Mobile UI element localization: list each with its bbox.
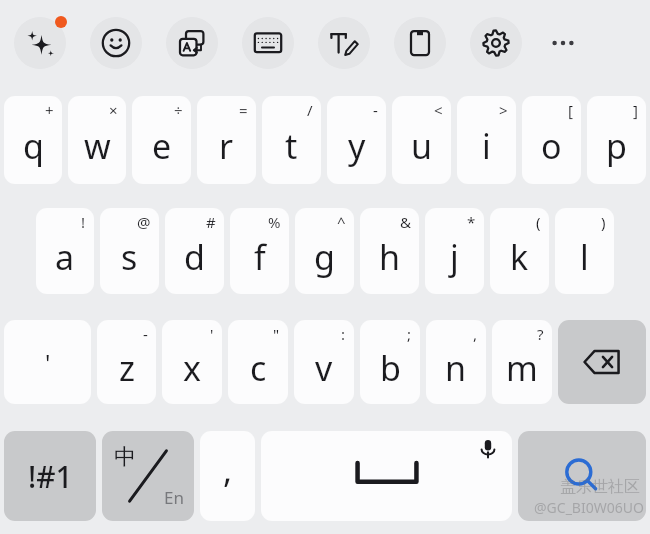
staticText: s bbox=[121, 234, 138, 280]
staticText: j bbox=[450, 234, 459, 280]
staticText: ^ bbox=[337, 212, 346, 232]
staticText: b bbox=[380, 345, 401, 391]
staticText: x bbox=[183, 345, 201, 391]
staticText: f bbox=[254, 234, 266, 280]
staticText: p bbox=[606, 123, 627, 169]
button[interactable]: ÷ bbox=[132, 96, 191, 184]
staticText: d bbox=[184, 234, 205, 280]
staticText: n bbox=[445, 345, 467, 391]
staticText: ; bbox=[407, 324, 412, 344]
staticText: y bbox=[348, 123, 366, 169]
button[interactable]: = bbox=[197, 96, 256, 184]
staticText: ! bbox=[81, 212, 86, 232]
button[interactable]: Keyboard layout bbox=[242, 17, 294, 69]
staticText: , bbox=[223, 447, 233, 493]
staticText: @ bbox=[137, 212, 151, 232]
staticText: !#1 bbox=[28, 456, 73, 497]
button[interactable]: - bbox=[327, 96, 386, 184]
staticText: g bbox=[314, 234, 335, 280]
staticText: e bbox=[152, 123, 172, 169]
button[interactable]: - bbox=[97, 320, 156, 404]
staticText: - bbox=[373, 100, 378, 120]
button[interactable]: Space bbox=[261, 431, 512, 521]
button[interactable]: Emoji bbox=[90, 17, 142, 69]
button[interactable]: ] bbox=[587, 96, 646, 184]
staticText: ) bbox=[601, 212, 606, 232]
button[interactable]: Clipboard bbox=[394, 17, 446, 69]
button[interactable]: ' bbox=[4, 320, 91, 404]
button[interactable]: * bbox=[425, 208, 484, 294]
staticText: En bbox=[164, 486, 184, 509]
button[interactable]: " bbox=[228, 320, 288, 404]
staticText: - bbox=[143, 324, 148, 344]
button[interactable]: : bbox=[294, 320, 354, 404]
staticText: u bbox=[411, 123, 433, 169]
button[interactable]: [ bbox=[522, 96, 581, 184]
staticText: " bbox=[273, 324, 280, 344]
staticText: * bbox=[467, 212, 476, 232]
staticText: k bbox=[510, 234, 529, 280]
button[interactable]: Translate bbox=[166, 17, 218, 69]
staticText: > bbox=[499, 100, 508, 120]
staticText: ÷ bbox=[174, 100, 183, 120]
staticText: ( bbox=[536, 212, 541, 232]
staticText: v bbox=[315, 345, 333, 391]
staticText: ' bbox=[45, 346, 51, 379]
staticText: c bbox=[250, 345, 267, 391]
button[interactable]: AI suggestions bbox=[14, 17, 66, 69]
button[interactable]: , bbox=[426, 320, 486, 404]
button[interactable]: ( bbox=[490, 208, 549, 294]
button[interactable]: & bbox=[360, 208, 419, 294]
button[interactable]: ) bbox=[555, 208, 614, 294]
staticText: & bbox=[400, 212, 411, 232]
staticText: @GC_BI0W06UO bbox=[534, 498, 644, 517]
button[interactable]: More options bbox=[538, 18, 588, 68]
staticText: z bbox=[119, 345, 135, 391]
button[interactable]: , bbox=[200, 431, 255, 521]
button[interactable]: # bbox=[165, 208, 224, 294]
staticText: o bbox=[541, 123, 562, 169]
button[interactable]: Search bbox=[518, 431, 646, 521]
staticText: # bbox=[206, 212, 216, 232]
staticText: w bbox=[84, 123, 111, 169]
staticText: % bbox=[268, 212, 281, 232]
staticText: ? bbox=[537, 324, 544, 344]
button[interactable]: Switch language Chinese English bbox=[102, 431, 194, 521]
button[interactable]: > bbox=[457, 96, 516, 184]
staticText: m bbox=[506, 345, 538, 391]
staticText: , bbox=[473, 324, 478, 344]
staticText: < bbox=[434, 100, 443, 120]
staticText: 盖乐世社区 bbox=[560, 477, 640, 497]
button[interactable]: % bbox=[230, 208, 289, 294]
button[interactable]: × bbox=[68, 96, 126, 184]
button[interactable]: ? bbox=[492, 320, 552, 404]
staticText: ' bbox=[210, 324, 214, 344]
staticText: ] bbox=[633, 100, 638, 120]
button[interactable]: / bbox=[262, 96, 321, 184]
button[interactable]: Handwriting bbox=[318, 17, 370, 69]
staticText: × bbox=[109, 100, 118, 120]
staticText: / bbox=[307, 100, 313, 120]
staticText: = bbox=[239, 100, 248, 120]
button[interactable]: ! bbox=[36, 208, 94, 294]
staticText: r bbox=[219, 123, 234, 169]
button[interactable]: ' bbox=[162, 320, 222, 404]
staticText: [ bbox=[568, 100, 573, 120]
button[interactable]: Settings bbox=[470, 17, 522, 69]
button[interactable]: Backspace bbox=[558, 320, 646, 404]
staticText: h bbox=[379, 234, 401, 280]
staticText: i bbox=[482, 123, 491, 169]
staticText: a bbox=[55, 234, 75, 280]
button[interactable]: ^ bbox=[295, 208, 354, 294]
staticText: l bbox=[580, 234, 589, 280]
button[interactable]: ; bbox=[360, 320, 420, 404]
button[interactable]: < bbox=[392, 96, 451, 184]
button[interactable]: !#1 bbox=[4, 431, 96, 521]
staticText: : bbox=[341, 324, 346, 344]
staticText: 中 bbox=[114, 443, 136, 471]
staticText: t bbox=[285, 123, 298, 169]
button[interactable]: + bbox=[4, 96, 62, 184]
staticText: q bbox=[23, 123, 44, 169]
staticText: + bbox=[45, 100, 54, 120]
button[interactable]: @ bbox=[100, 208, 159, 294]
